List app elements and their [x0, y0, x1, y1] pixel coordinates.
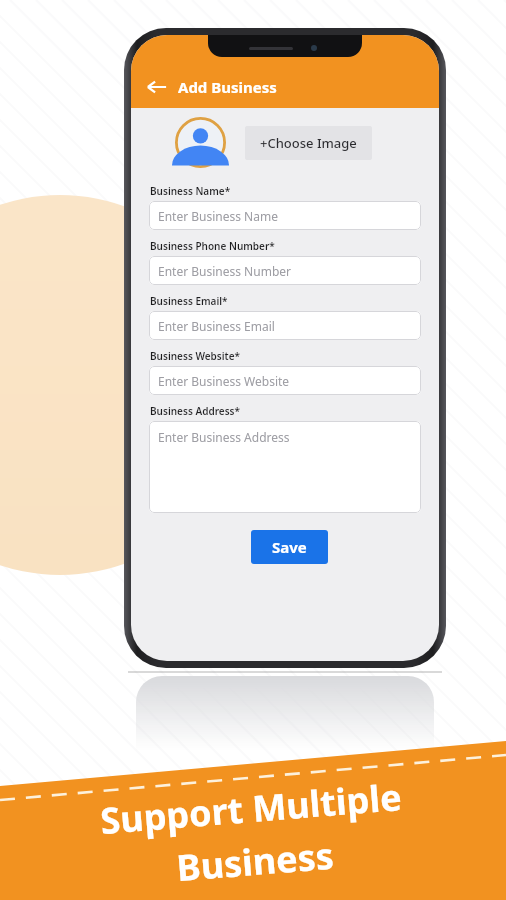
staticText: Business Website* — [150, 349, 240, 363]
button[interactable]: Save — [251, 530, 328, 564]
button[interactable]: Enter Business Number — [149, 256, 421, 285]
staticText: Business Phone Number* — [150, 239, 275, 253]
staticText: Support Multiple — [98, 772, 403, 845]
staticText: Business — [174, 831, 336, 892]
staticText: Enter Business Email — [158, 318, 275, 334]
staticText: +Choose Image — [260, 134, 357, 152]
button[interactable]: +Choose Image — [245, 126, 372, 160]
staticText: Business Email* — [150, 294, 228, 308]
button[interactable]: Back — [145, 75, 169, 99]
staticText: Enter Business Address — [158, 429, 290, 445]
button[interactable]: Enter Business Email — [149, 311, 421, 340]
staticText: Add Business — [178, 77, 277, 97]
button[interactable]: Enter Business Address — [149, 421, 421, 513]
staticText: Business Address* — [150, 404, 240, 418]
button[interactable]: Enter Business Website — [149, 366, 421, 395]
staticText: Enter Business Name — [158, 208, 278, 224]
button[interactable]: Profile image — [175, 117, 226, 168]
staticText: Save — [272, 537, 307, 557]
button[interactable]: Enter Business Name — [149, 201, 421, 230]
staticText: Enter Business Website — [158, 373, 290, 389]
staticText: Business Name* — [150, 184, 231, 198]
staticText: Enter Business Number — [158, 263, 291, 279]
